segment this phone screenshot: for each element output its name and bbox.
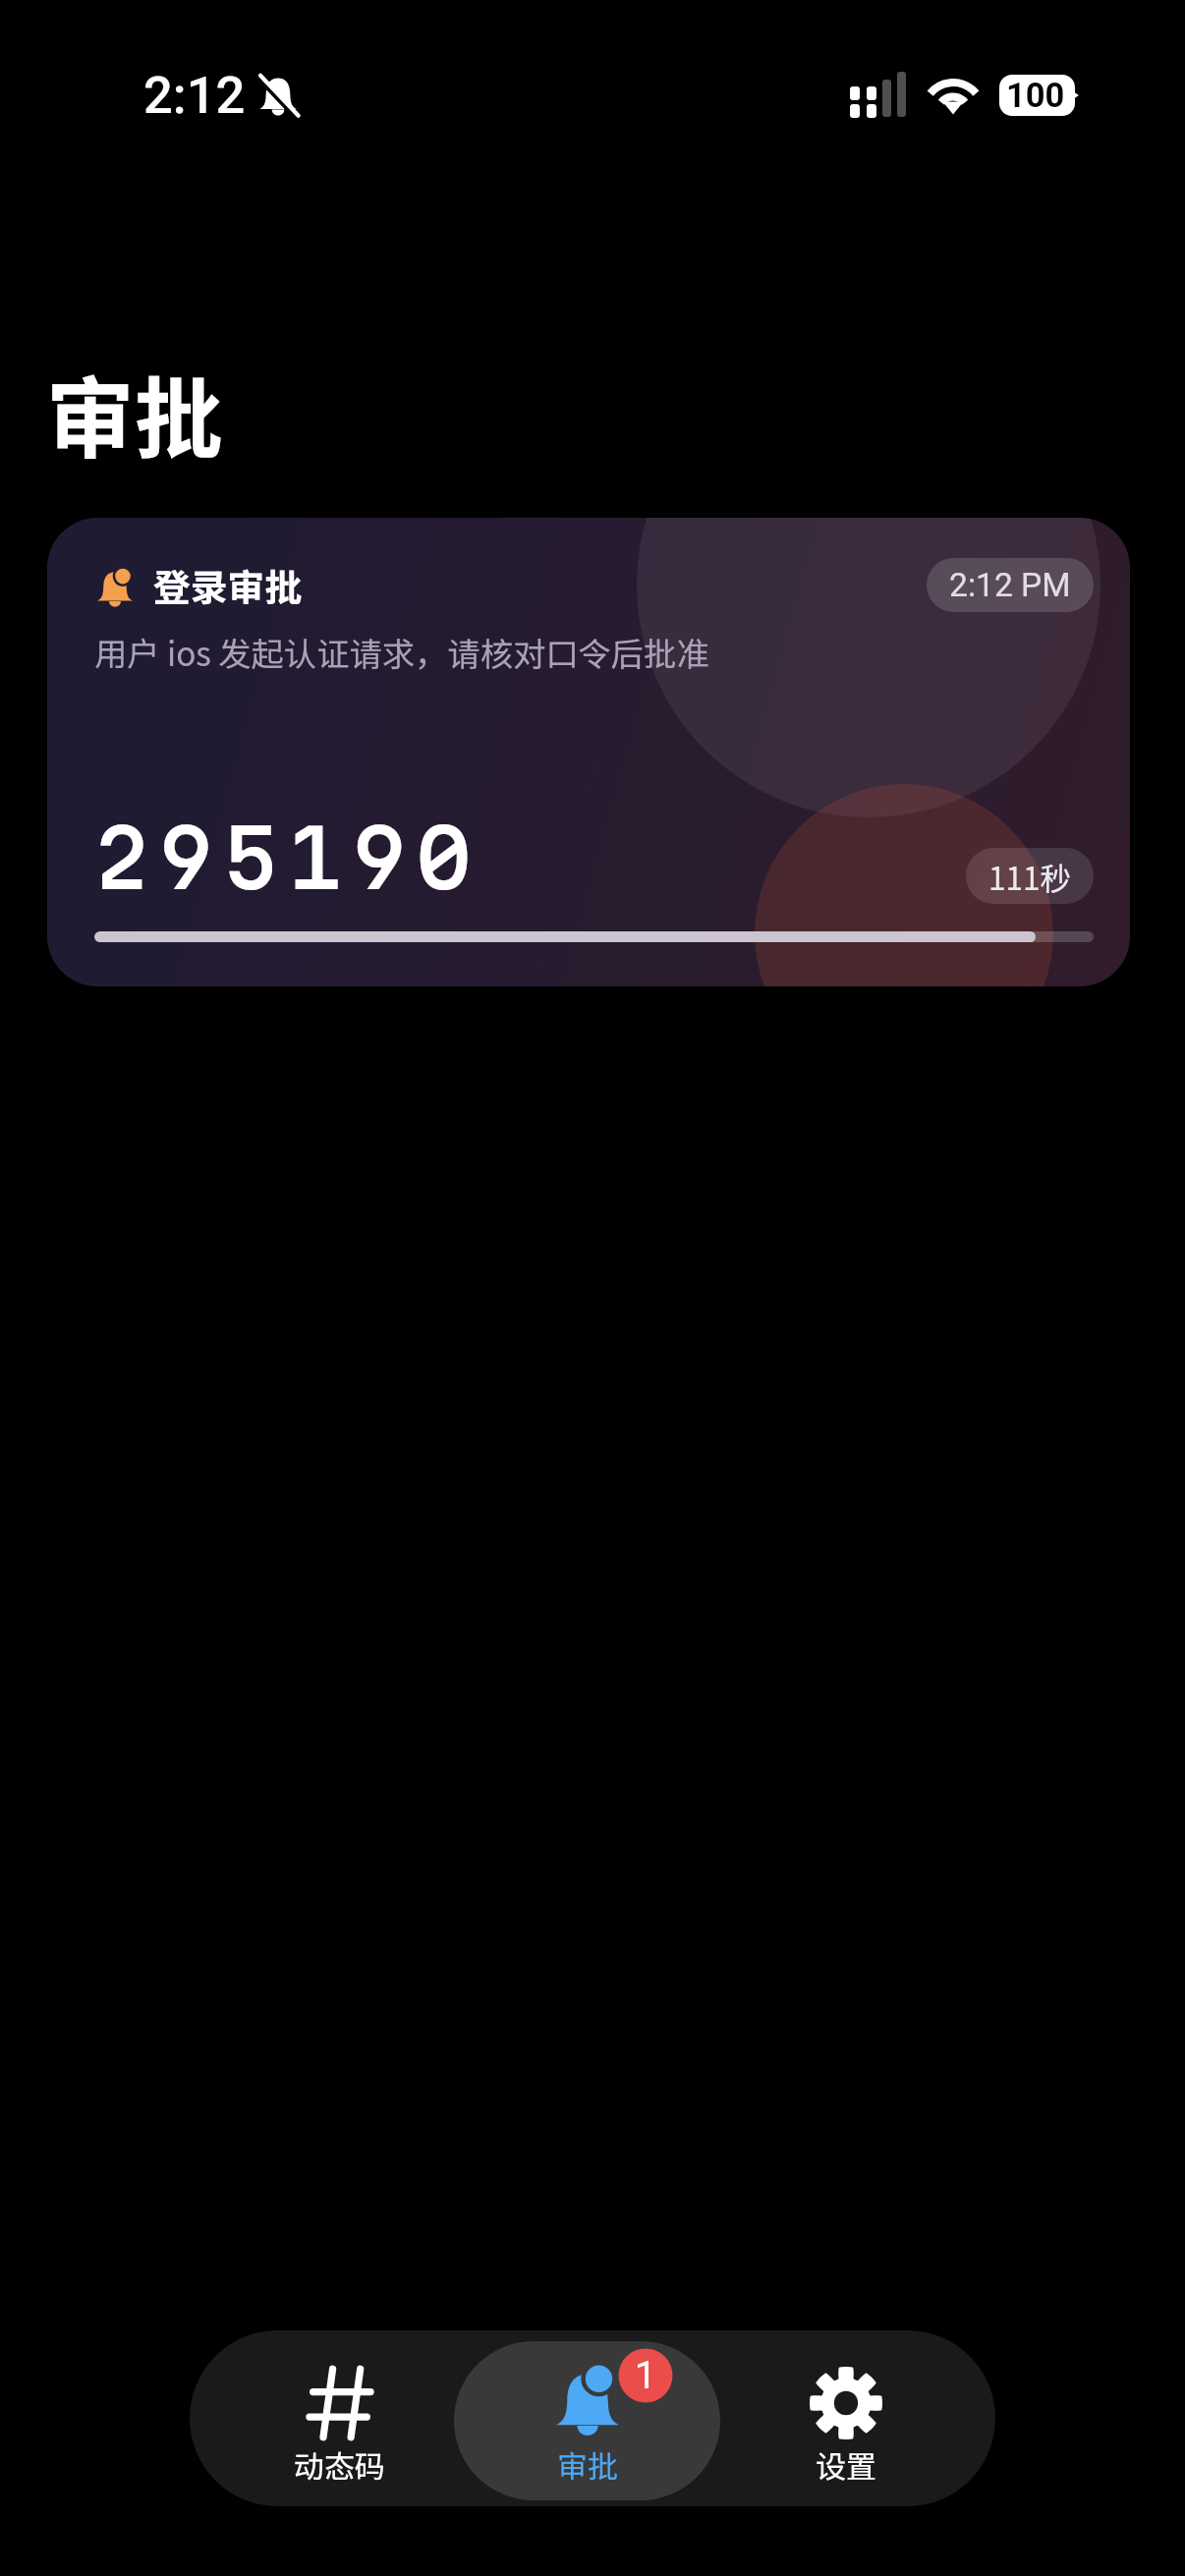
- staticText: 登录审批: [153, 558, 303, 612]
- button[interactable]: Settings: [712, 2341, 979, 2500]
- staticText: 1: [635, 2353, 656, 2398]
- button[interactable]: Approvals: [454, 2341, 720, 2500]
- button[interactable]: Dynamic codes: [206, 2341, 473, 2500]
- staticText: 2:12 PM: [949, 566, 1071, 604]
- staticText: 100: [1006, 76, 1065, 115]
- staticText: 111秒: [988, 854, 1071, 899]
- staticText: 审批: [557, 2442, 618, 2487]
- staticText: 审批: [46, 349, 223, 476]
- staticText: 设置: [816, 2442, 876, 2487]
- button[interactable]: 登录审批: [47, 518, 1130, 986]
- staticText: 2:12: [143, 65, 246, 126]
- staticText: 动态码: [294, 2442, 385, 2487]
- staticText: 用户 ios 发起认证请求，请核对口令后批准: [94, 628, 709, 675]
- staticText: 295190: [94, 811, 481, 904]
